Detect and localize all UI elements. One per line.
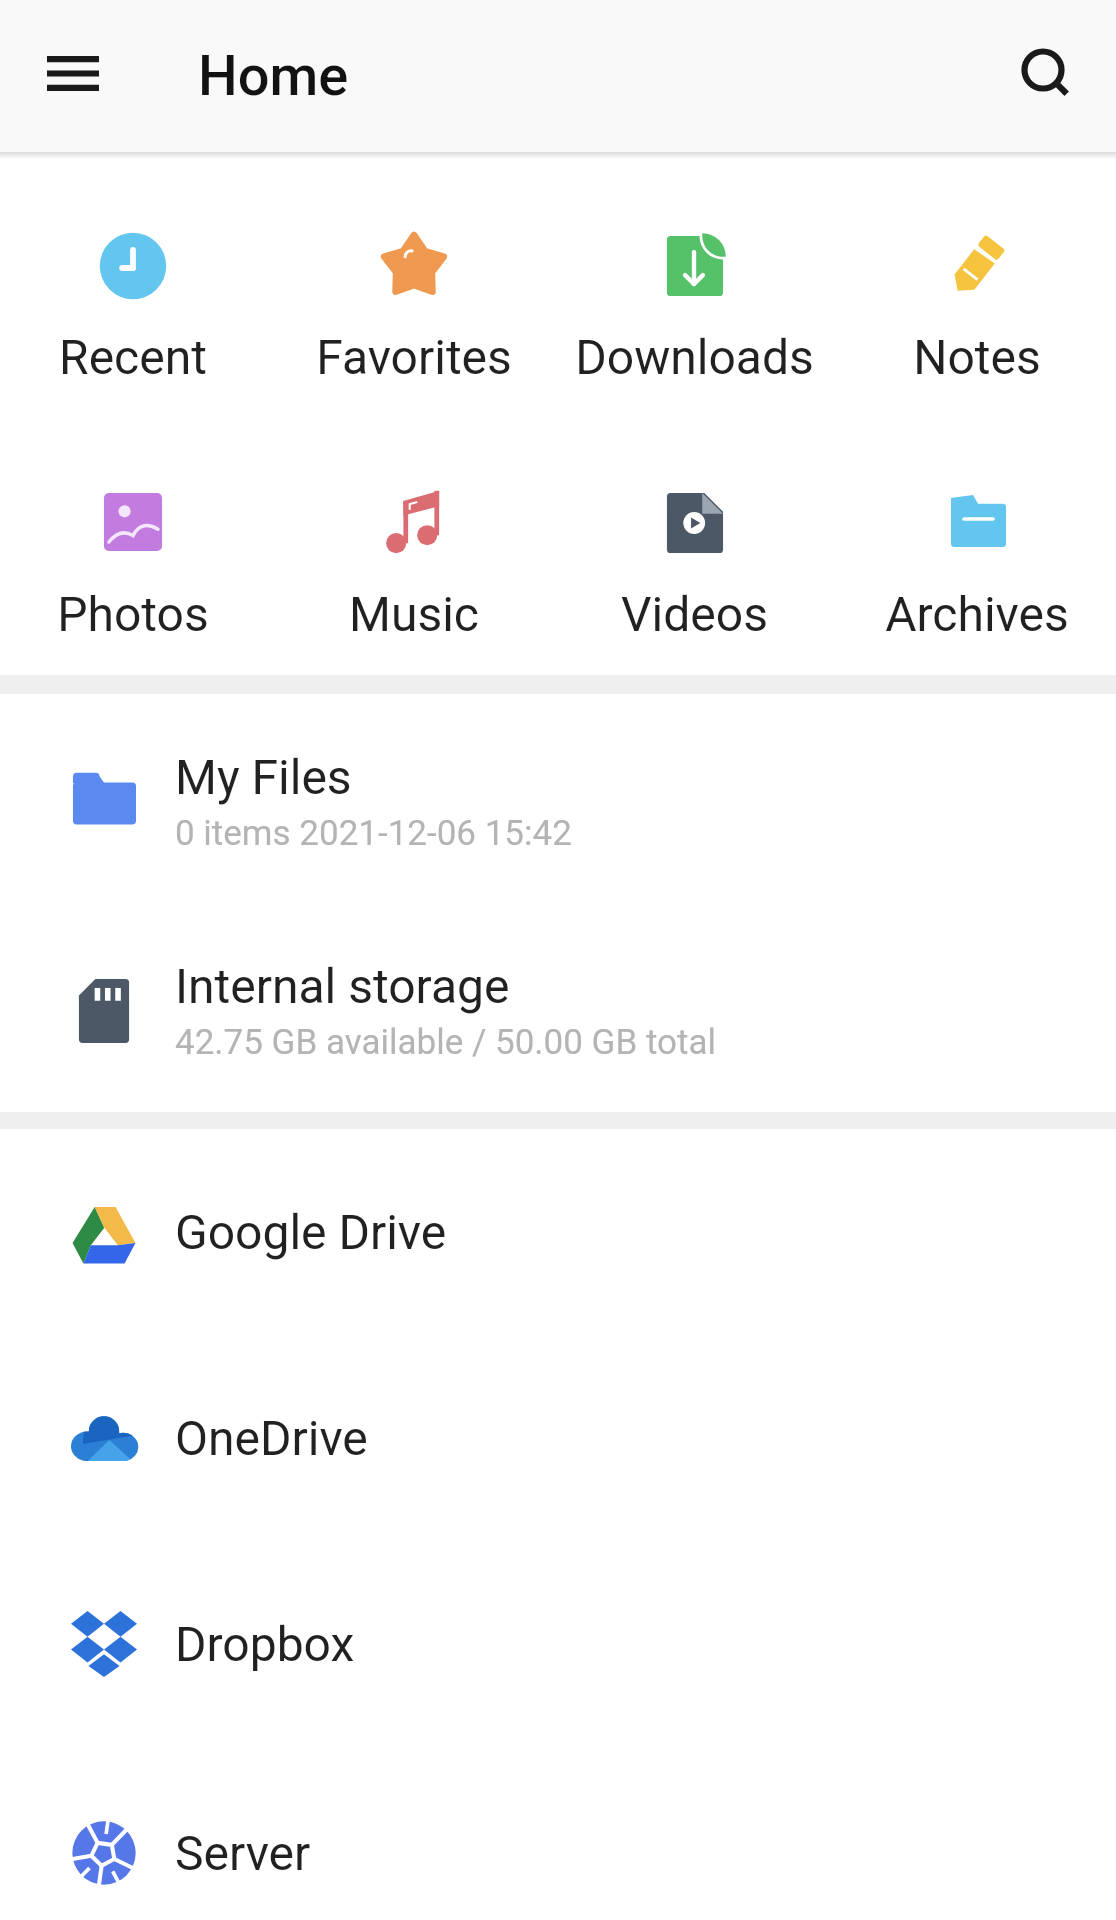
staticText: Internal storage [175,958,510,1014]
staticText: Google Drive [175,1204,447,1260]
staticText: Home [198,43,349,109]
button[interactable]: Downloads [558,159,837,416]
button[interactable]: Videos [558,416,837,673]
staticText: Dropbox [175,1616,355,1672]
staticText: Archives [885,586,1069,642]
button[interactable]: Search [988,22,1096,130]
staticText: OneDrive [175,1410,368,1466]
staticText: Downloads [575,329,814,385]
staticText: Server [175,1825,311,1881]
button[interactable]: Archives [837,416,1116,673]
staticText: My Files [175,749,352,805]
staticText: Photos [57,586,209,642]
staticText: Notes [913,329,1041,385]
button[interactable]: Internal storage [0,908,1116,1112]
button[interactable]: Notes [837,159,1116,416]
staticText: 0 items 2021-12-06 15:42 [175,813,572,854]
button[interactable]: Recent [0,159,279,416]
staticText: 42.75 GB available / 50.00 GB total [175,1022,717,1063]
button[interactable]: Server [0,1747,1116,1920]
button[interactable]: Open navigation menu [19,22,127,130]
staticText: Music [349,586,479,642]
button[interactable]: Photos [0,416,279,673]
staticText: Recent [59,329,207,385]
button[interactable]: Dropbox [0,1541,1116,1747]
button[interactable]: My Files [0,694,1116,908]
button[interactable]: Music [279,416,558,673]
button[interactable]: OneDrive [0,1335,1116,1541]
staticText: Videos [621,586,768,642]
button[interactable]: Favorites [279,159,558,416]
button[interactable]: Google Drive [0,1129,1116,1335]
staticText: Favorites [316,329,512,385]
